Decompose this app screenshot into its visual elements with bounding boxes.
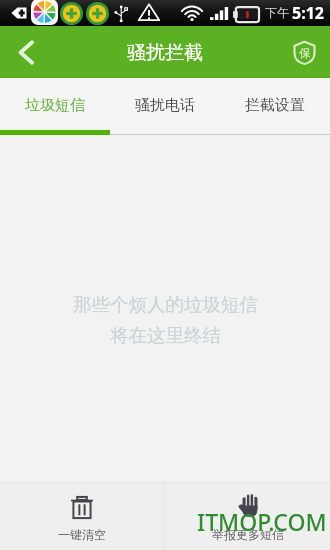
button[interactable]: 拦截设置 xyxy=(220,78,330,135)
button[interactable]: 一键清空 xyxy=(0,484,164,550)
staticText: 举报更多短信 xyxy=(212,527,284,542)
staticText: 骚扰电话 xyxy=(135,96,195,115)
button[interactable]: Protection settings xyxy=(280,26,330,78)
button[interactable]: Back xyxy=(0,26,48,78)
staticText: 5:12 xyxy=(292,2,324,24)
staticText: 将在这里终结 xyxy=(110,324,221,347)
staticText: 垃圾短信 xyxy=(25,96,85,115)
button[interactable]: 骚扰电话 xyxy=(110,78,220,135)
staticText: 一键清空 xyxy=(58,527,106,542)
staticText: 下午 xyxy=(265,5,289,20)
staticText: ITMOP.COM xyxy=(197,506,327,537)
staticText: 那些个烦人的垃圾短信 xyxy=(73,293,258,316)
button[interactable]: 垃圾短信 xyxy=(0,78,110,135)
staticText: 保 xyxy=(299,46,310,60)
staticText: 拦截设置 xyxy=(245,96,305,115)
staticText: 骚扰拦截 xyxy=(127,41,203,65)
button[interactable]: 举报更多短信 xyxy=(165,484,330,550)
